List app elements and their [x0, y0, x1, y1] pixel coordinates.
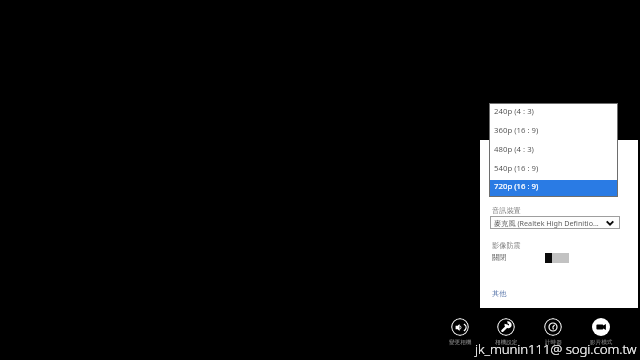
- button[interactable]: 相機設定: [486, 318, 526, 346]
- button[interactable]: 480p (4 : 3): [490, 142, 617, 161]
- button[interactable]: 計時器: [533, 318, 573, 346]
- staticText: 720p (16 : 9): [494, 181, 539, 192]
- staticText: 360p (16 : 9): [494, 125, 539, 136]
- staticText: 麥克風 (Realtek High Definitio...: [494, 218, 599, 228]
- staticText: 音訊裝置: [492, 206, 521, 215]
- staticText: 540p (16 : 9): [494, 163, 539, 174]
- staticText: 計時器: [545, 339, 562, 346]
- staticText: 變更相機: [449, 339, 472, 346]
- button[interactable]: 720p (16 : 9): [490, 180, 617, 196]
- button[interactable]: 影片模式: [581, 318, 621, 346]
- staticText: 相機設定: [495, 339, 518, 346]
- button[interactable]: 麥克風 (Realtek High Definitio...: [490, 216, 620, 229]
- staticText: 240p (4 : 3): [494, 106, 534, 117]
- button[interactable]: 240p (4 : 3): [490, 104, 617, 123]
- staticText: 影像防震: [492, 241, 521, 250]
- staticText: 480p (4 : 3): [494, 144, 534, 155]
- staticText: 影片模式: [590, 339, 613, 346]
- staticText: jk_munin111@ sogi.com.tw: [475, 340, 637, 358]
- button[interactable]: 540p (16 : 9): [490, 161, 617, 180]
- button[interactable]: 其他: [492, 289, 507, 298]
- button[interactable]: 變更相機: [440, 318, 480, 346]
- button[interactable]: 關閉: [492, 253, 507, 262]
- button[interactable]: [545, 253, 569, 263]
- button[interactable]: 360p (16 : 9): [490, 123, 617, 142]
